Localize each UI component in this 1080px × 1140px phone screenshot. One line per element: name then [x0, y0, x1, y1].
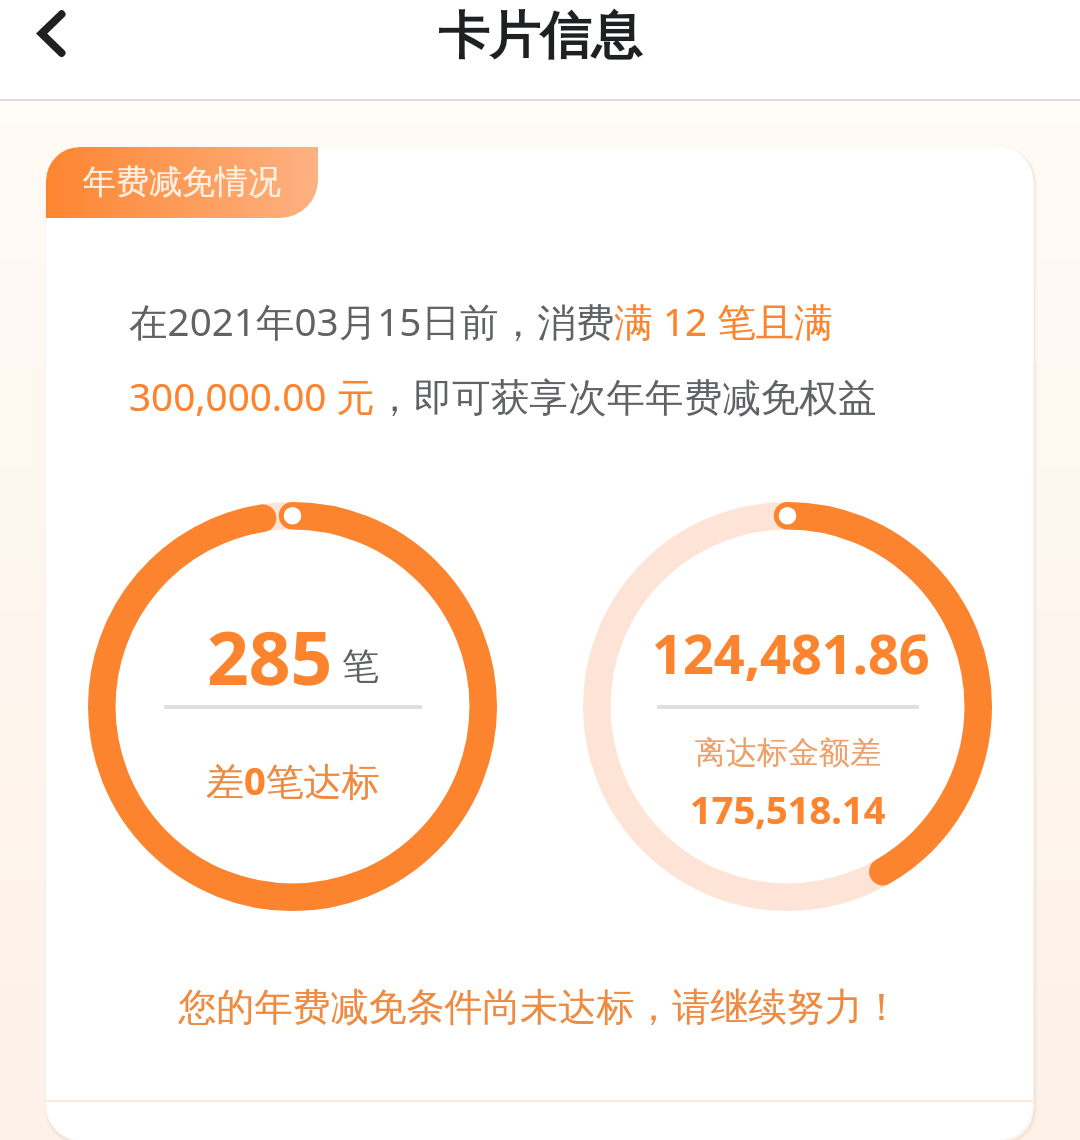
- staticText: 差0笔达标: [206, 754, 380, 806]
- staticText: 175,518.14: [690, 783, 886, 835]
- staticText: 您的年费减免条件尚未达标，请继续努力！: [46, 983, 1033, 1031]
- button[interactable]: Back: [11, 0, 91, 80]
- staticText: 在2021年03月15日前，消费满 12 笔且满 300,000.00 元，即可…: [129, 295, 929, 422]
- staticText: 年费减免情况: [83, 161, 281, 203]
- staticText: 离达标金额差: [695, 733, 881, 772]
- staticText: 285: [207, 607, 333, 706]
- staticText: 笔: [342, 643, 379, 690]
- staticText: 124,481.86: [652, 616, 930, 690]
- staticText: 卡片信息: [438, 4, 642, 68]
